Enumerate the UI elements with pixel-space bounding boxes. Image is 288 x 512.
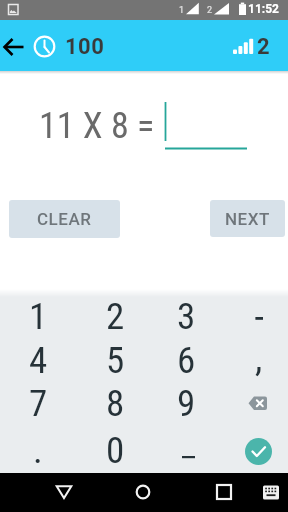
button[interactable]: NEXT (210, 200, 285, 237)
button[interactable]: 6 (151, 338, 221, 382)
staticText: 9 (177, 382, 196, 425)
button[interactable] (127, 477, 159, 507)
button[interactable] (160, 98, 252, 154)
staticText: 1 (179, 5, 185, 16)
staticText: 7 (29, 382, 48, 425)
button[interactable] (255, 478, 287, 506)
button[interactable]: 9 (151, 381, 221, 425)
staticText: 11:52 (248, 2, 279, 16)
staticText: , (255, 337, 263, 380)
button[interactable]: . (3, 428, 73, 472)
button[interactable]: 7 (3, 381, 73, 425)
staticText: 6 (177, 339, 196, 382)
button[interactable] (226, 381, 288, 425)
button[interactable] (0, 28, 34, 64)
button[interactable]: 4 (3, 338, 73, 382)
staticText: 2 (257, 34, 270, 60)
button[interactable]: 5 (80, 338, 150, 382)
staticText: 8 (106, 382, 125, 425)
button[interactable]: 8 (80, 381, 150, 425)
staticText: 100 (65, 34, 105, 60)
button[interactable]: , (230, 336, 288, 380)
staticText: 0 (106, 429, 125, 472)
button[interactable]: 0 (80, 428, 150, 472)
staticText: 1 (29, 295, 48, 338)
staticText: 5 (106, 339, 125, 382)
button[interactable] (208, 477, 240, 507)
button[interactable]: 1 (3, 294, 73, 338)
button[interactable]: 3 (151, 294, 221, 338)
staticText: 11 X 8 = (39, 105, 155, 147)
staticText: CLEAR (37, 209, 92, 229)
staticText: NEXT (225, 209, 270, 229)
staticText: 2 (207, 5, 213, 16)
button[interactable]: 2 (80, 294, 150, 338)
button[interactable] (153, 427, 219, 471)
button[interactable] (232, 425, 285, 478)
staticText: 4 (29, 339, 48, 382)
staticText: . (33, 429, 43, 472)
button[interactable] (226, 294, 288, 338)
button[interactable]: CLEAR (9, 200, 120, 238)
staticText: 3 (177, 295, 196, 338)
staticText: 2 (106, 295, 125, 338)
button[interactable] (48, 477, 80, 507)
